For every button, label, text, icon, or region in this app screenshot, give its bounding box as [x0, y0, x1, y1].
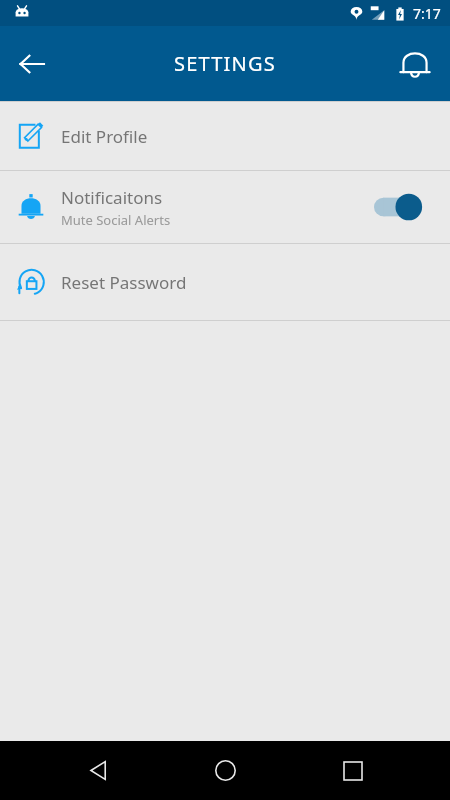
button[interactable]: Recent apps	[323, 741, 383, 800]
button[interactable]: Edit Profile	[0, 102, 450, 170]
staticText: SETTINGS	[174, 50, 276, 77]
staticText: Reset Password	[61, 271, 187, 294]
staticText: Edit Profile	[61, 125, 148, 148]
button[interactable]: Notifications	[388, 37, 442, 91]
button[interactable]: Toggle notifications	[374, 189, 428, 225]
staticText: 7:17	[413, 4, 441, 23]
staticText: Mute Social Alerts	[61, 211, 171, 229]
button[interactable]: Home	[195, 741, 255, 800]
button[interactable]: Back	[6, 38, 58, 90]
button[interactable]: Reset Password	[0, 244, 450, 320]
button[interactable]: Notificaitons	[0, 171, 450, 243]
staticText: Notificaitons	[61, 186, 163, 209]
button[interactable]: Back	[68, 741, 128, 800]
